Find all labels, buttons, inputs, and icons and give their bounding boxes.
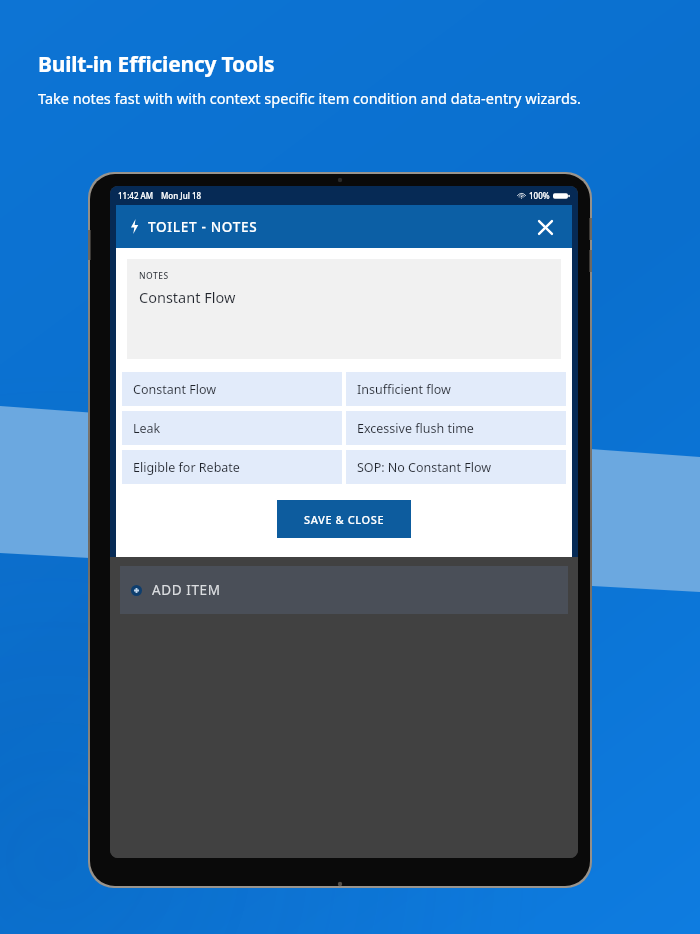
button[interactable]: ADD ITEM (120, 566, 568, 614)
staticText: Built-in Efficiency Tools (38, 50, 275, 79)
button[interactable]: Eligible for Rebate (122, 450, 342, 484)
staticText: TOILET - NOTES (148, 218, 258, 236)
staticText: Take notes fast with with context specif… (38, 88, 581, 108)
button[interactable]: Constant Flow (122, 372, 342, 406)
button[interactable]: SAVE & CLOSE (277, 500, 411, 538)
staticText: Mon Jul 18 (161, 190, 202, 201)
button[interactable]: NOTES (127, 259, 561, 359)
staticText: NOTES (139, 270, 169, 282)
button[interactable]: Insufficient flow (346, 372, 566, 406)
staticText: 11:42 AM (118, 190, 154, 201)
staticText: SAVE & CLOSE (304, 512, 385, 527)
button[interactable]: Leak (122, 411, 342, 445)
staticText: ADD ITEM (152, 581, 221, 599)
staticText: Constant Flow (133, 381, 217, 398)
staticText: Insufficient flow (357, 381, 451, 398)
staticText: Constant Flow (139, 287, 236, 307)
button[interactable]: Close (530, 212, 560, 242)
button[interactable]: SOP: No Constant Flow (346, 450, 566, 484)
staticText: Excessive flush time (357, 420, 474, 437)
staticText: 100% (529, 190, 550, 201)
staticText: Eligible for Rebate (133, 459, 240, 476)
staticText: SOP: No Constant Flow (357, 459, 492, 476)
button[interactable]: Excessive flush time (346, 411, 566, 445)
staticText: Leak (133, 420, 161, 437)
